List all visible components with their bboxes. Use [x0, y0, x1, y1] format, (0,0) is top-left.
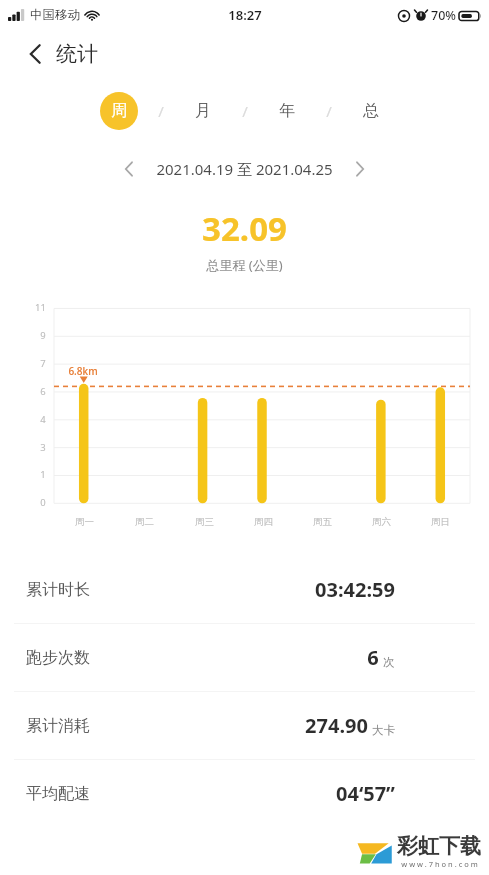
staticText: 70%	[431, 7, 456, 24]
staticText: 总	[363, 101, 379, 121]
button[interactable]: 月	[184, 92, 222, 130]
staticText: w w w . 7 h o n . c o m	[401, 859, 478, 869]
staticText: 2021.04.19 至 2021.04.25	[156, 159, 333, 179]
staticText: 周四	[254, 516, 273, 528]
button[interactable]: 平均配速	[0, 760, 489, 827]
staticText: 累计时长	[26, 580, 90, 600]
staticText: /	[158, 101, 164, 121]
staticText: 7	[40, 357, 46, 370]
staticText: 累计消耗	[26, 716, 90, 736]
staticText: 周一	[75, 516, 94, 528]
staticText: 11	[35, 301, 46, 314]
button[interactable]: Next week	[343, 152, 377, 186]
button[interactable]: 累计时长	[0, 556, 489, 623]
staticText: 周五	[313, 516, 332, 528]
staticText: 总里程 (公里)	[206, 256, 283, 274]
staticText: 274.90	[305, 712, 368, 739]
button[interactable]: 累计消耗	[0, 692, 489, 759]
staticText: 年	[279, 101, 295, 121]
staticText: 周	[111, 101, 127, 121]
button[interactable]: 周	[100, 92, 138, 130]
staticText: 周日	[431, 516, 450, 528]
staticText: 32.09	[202, 206, 287, 251]
staticText: 周三	[195, 516, 214, 528]
button[interactable]: 总	[352, 92, 390, 130]
staticText: 18:27	[228, 6, 262, 24]
button[interactable]: Back	[18, 37, 52, 71]
staticText: 彩虹下载	[397, 833, 481, 859]
button[interactable]: 年	[268, 92, 306, 130]
staticText: 4	[40, 413, 46, 426]
staticText: 次	[383, 655, 395, 669]
staticText: 中国移动	[30, 7, 80, 23]
staticText: 大卡	[372, 723, 395, 737]
staticText: 月	[195, 101, 211, 121]
staticText: /	[326, 101, 332, 121]
staticText: /	[242, 101, 248, 121]
staticText: 6.8km	[68, 364, 98, 378]
staticText: 6	[367, 644, 379, 671]
staticText: 跑步次数	[26, 648, 90, 668]
button[interactable]: 跑步次数	[0, 624, 489, 691]
staticText: 平均配速	[26, 784, 90, 804]
staticText: 0	[40, 496, 46, 509]
staticText: 6	[40, 385, 46, 398]
staticText: 周二	[135, 516, 154, 528]
staticText: 9	[40, 329, 46, 342]
staticText: 统计	[56, 41, 98, 67]
button[interactable]: Previous week	[112, 152, 146, 186]
staticText: 3	[40, 441, 46, 454]
staticText: 04‘57”	[336, 780, 395, 807]
staticText: 03:42:59	[315, 576, 395, 603]
staticText: 周六	[372, 516, 391, 528]
staticText: 1	[40, 468, 46, 481]
